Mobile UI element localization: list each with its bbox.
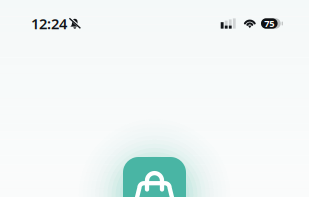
staticText: 75 [264,17,274,30]
staticText: 12:24 [31,14,67,33]
